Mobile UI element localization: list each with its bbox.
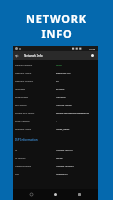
button[interactable]: Private DNS Server bbox=[13, 109, 98, 117]
button[interactable]: Back bbox=[13, 51, 20, 60]
staticText: EveryCom LLC bbox=[56, 72, 71, 75]
button[interactable]: Home bbox=[50, 189, 61, 200]
staticText: IN bbox=[56, 80, 59, 83]
button[interactable]: Proxy Address bbox=[13, 117, 98, 125]
staticText: 192.168.100.28 bbox=[56, 104, 72, 107]
staticText: 50 Mb/s bbox=[56, 88, 65, 91]
button[interactable]: Refresh bbox=[88, 51, 97, 60]
button[interactable]: Recent apps bbox=[74, 189, 85, 200]
staticText: Mumbai IN bbox=[56, 173, 68, 176]
button[interactable]: Operator Name bbox=[13, 69, 98, 77]
button[interactable]: Network Range bbox=[13, 162, 98, 170]
staticText: Downstream bbox=[15, 96, 29, 99]
staticText: 103.206.189.101 bbox=[56, 149, 73, 152]
staticText: Good bbox=[56, 64, 62, 67]
staticText: Network Range bbox=[15, 165, 31, 168]
staticText: INFO bbox=[41, 26, 73, 41]
button[interactable]: Operator Country bbox=[13, 77, 98, 85]
staticText: Network Info bbox=[24, 54, 43, 58]
button[interactable]: Upstream bbox=[13, 85, 98, 93]
staticText: Proxy Address bbox=[15, 120, 30, 123]
staticText: rmnet_data0 bbox=[56, 128, 70, 131]
staticText: ISP Information bbox=[15, 138, 38, 142]
staticText: Cellular Network bbox=[15, 64, 33, 67]
staticText: NETWORK bbox=[26, 11, 87, 26]
staticText: - bbox=[56, 120, 57, 123]
staticText: Private DNS Server bbox=[15, 112, 35, 115]
staticText: 12:45 bbox=[89, 47, 96, 50]
staticText: 103.206.184.0/24 bbox=[56, 165, 74, 168]
staticText: Interface Name bbox=[15, 128, 32, 131]
staticText: IP Version bbox=[15, 157, 26, 160]
staticText: IPv4/6 bbox=[56, 157, 63, 160]
staticText: DNS Server bbox=[15, 104, 27, 107]
button[interactable]: Back bbox=[26, 189, 37, 200]
staticText: Upstream bbox=[15, 88, 26, 91]
staticText: private-dns.everycomnetwork.in bbox=[56, 112, 90, 115]
button[interactable]: City bbox=[13, 170, 98, 178]
staticText: City bbox=[15, 173, 19, 176]
staticText: IP bbox=[15, 149, 18, 152]
button[interactable]: IP Version bbox=[13, 154, 98, 162]
staticText: 100 Mb/s bbox=[56, 96, 66, 99]
button[interactable]: Interface Name bbox=[13, 125, 98, 133]
staticText: Operator Name bbox=[15, 72, 32, 75]
button[interactable]: DNS Server bbox=[13, 101, 98, 109]
button[interactable]: Downstream bbox=[13, 93, 98, 101]
button[interactable]: Cellular Network bbox=[13, 61, 98, 69]
staticText: Operator Country bbox=[15, 80, 34, 83]
button[interactable]: IP bbox=[13, 146, 98, 154]
